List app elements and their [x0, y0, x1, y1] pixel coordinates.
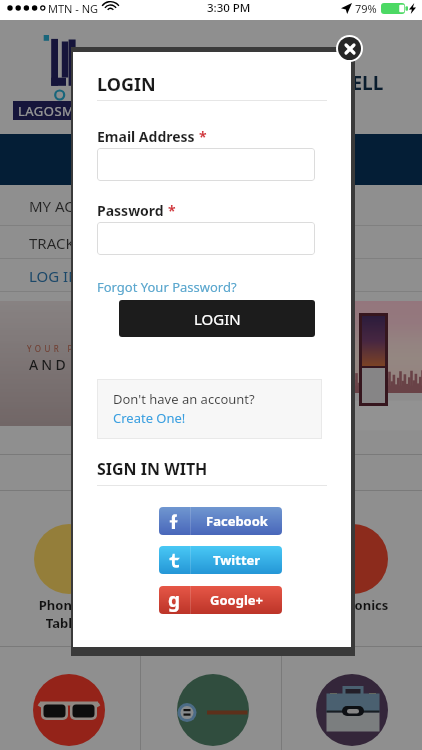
button[interactable]	[97, 222, 315, 255]
staticText: TRACK ORDER	[29, 233, 129, 253]
staticText: *	[168, 201, 176, 220]
button[interactable]: LOGIN	[119, 300, 315, 337]
button[interactable]: LOG IN	[0, 259, 422, 292]
staticText: Password	[97, 201, 164, 220]
button[interactable]: Facebook	[159, 507, 282, 535]
staticText: Phones & Tablets	[0, 596, 139, 632]
button[interactable]: TRACK ORDER	[0, 226, 422, 259]
staticText: LOG IN	[29, 266, 80, 286]
staticText: Create One!	[113, 409, 186, 427]
staticText: SIGN IN WITH	[97, 458, 208, 480]
button[interactable]: Category	[318, 524, 388, 594]
staticText: g	[168, 587, 181, 613]
staticText: LOGIN	[97, 72, 156, 97]
staticText: Facebook	[206, 512, 268, 530]
staticText: *	[199, 127, 207, 146]
staticText: LOGIN	[194, 309, 241, 329]
button[interactable]: Category	[316, 674, 388, 746]
staticText: Google+	[210, 591, 263, 609]
button[interactable]: g	[159, 586, 282, 614]
staticText: Email Address	[97, 127, 195, 146]
button[interactable]: Category	[33, 674, 105, 746]
button[interactable]: Close	[338, 37, 361, 60]
staticText: Don't have an account?	[113, 390, 255, 408]
staticText: 79%	[355, 1, 377, 16]
staticText: AND ONE	[29, 355, 115, 374]
staticText: Twitter	[213, 551, 261, 569]
button[interactable]: MY ACCOUNT	[0, 185, 422, 226]
button[interactable]: Forgot Your Password?	[97, 278, 237, 296]
staticText: Fashion	[141, 596, 281, 614]
button[interactable]: Search	[0, 134, 422, 185]
staticText: LAGOSMALL	[18, 102, 98, 120]
button[interactable]: Twitter	[159, 546, 282, 574]
staticText: SELL	[341, 70, 384, 96]
button[interactable]	[97, 148, 315, 181]
button[interactable]: Category	[34, 524, 104, 594]
button[interactable]: Category	[177, 674, 249, 746]
staticText: Electronics	[283, 596, 422, 614]
staticText: 3:30 PM	[207, 0, 251, 16]
staticText: MY ACCOUNT	[29, 196, 126, 216]
staticText: YOUR PREMIER	[27, 343, 125, 354]
button[interactable]: Category	[176, 524, 246, 594]
button[interactable]: Don't have an account?	[97, 379, 322, 439]
staticText: MTN - NG	[48, 1, 99, 16]
